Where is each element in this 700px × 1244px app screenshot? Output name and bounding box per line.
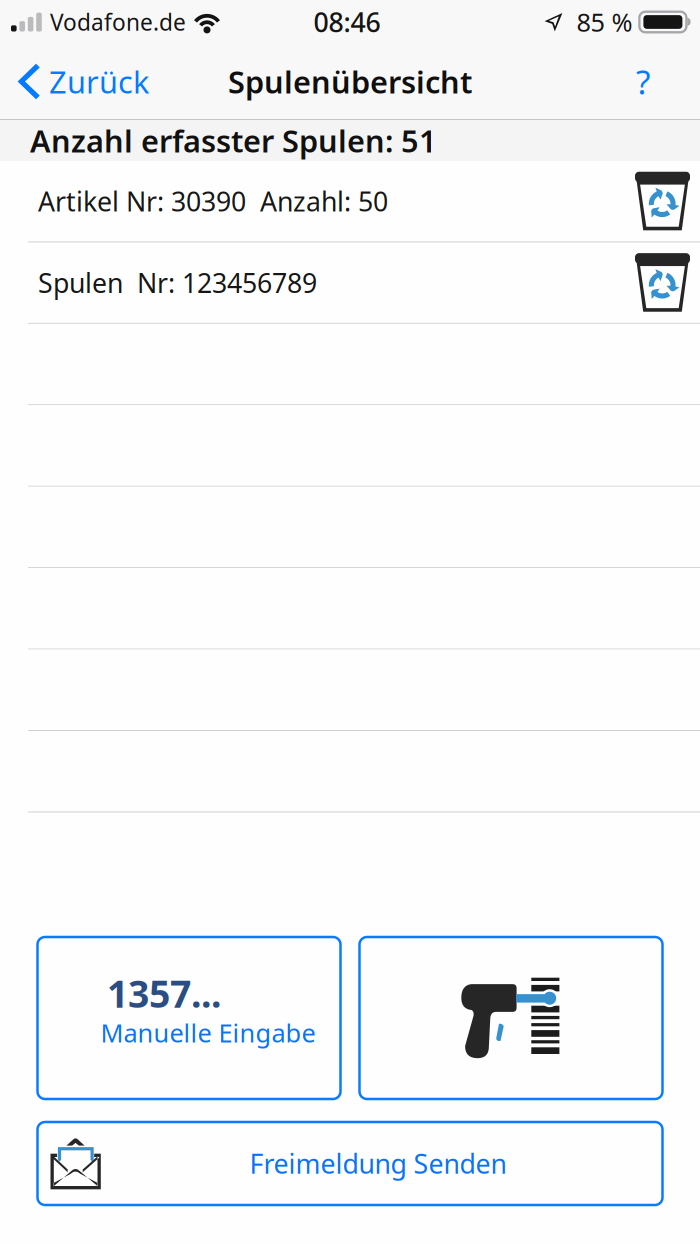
button[interactable]: Hilfe <box>621 59 665 103</box>
staticText: Zurück <box>49 61 149 102</box>
staticText: Manuelle Eingabe <box>100 1016 315 1050</box>
staticText: Freimeldung Senden <box>249 1146 506 1181</box>
staticText: 85 % <box>576 5 632 39</box>
button[interactable]: Löschen <box>635 172 700 231</box>
staticText: Spulenübersicht <box>228 61 472 102</box>
button[interactable]: Löschen <box>635 253 700 312</box>
button[interactable]: Freimeldung Senden <box>37 1122 662 1205</box>
button[interactable]: 1357... <box>37 937 340 1099</box>
staticText: Spulen Nr: 123456789 <box>38 265 317 300</box>
staticText: 08:46 <box>313 4 380 40</box>
staticText: ? <box>636 59 650 104</box>
staticText: Anzahl erfasster Spulen: 51 <box>30 120 437 161</box>
staticText: Vodafone.de <box>50 7 186 37</box>
button[interactable] <box>359 937 662 1099</box>
staticText: 1357... <box>107 968 221 1018</box>
button[interactable]: Zurück <box>0 54 149 109</box>
staticText: Artikel Nr: 30390 Anzahl: 50 <box>38 183 388 219</box>
